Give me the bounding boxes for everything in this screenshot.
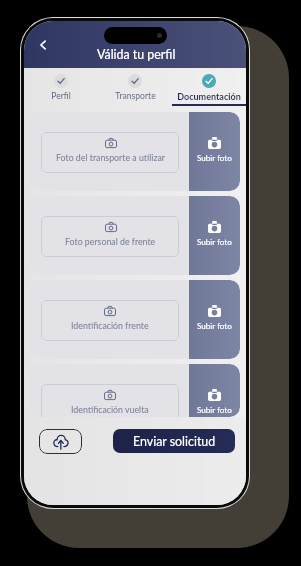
button[interactable]: Enviar solicitud <box>113 429 235 453</box>
staticText: Enviar solicitud <box>133 434 216 449</box>
staticText: Documentación <box>177 91 241 102</box>
button[interactable]: Identificación frente <box>41 300 179 341</box>
button[interactable]: Upload file <box>39 429 82 454</box>
button[interactable]: Subir foto <box>189 364 240 417</box>
button[interactable]: Documentación <box>172 68 246 106</box>
staticText: Subir foto <box>197 405 232 415</box>
staticText: Válida tu perfil <box>97 47 176 62</box>
button[interactable]: Foto del transporte a utilizar <box>41 132 179 173</box>
staticText: Subir foto <box>197 237 232 247</box>
button[interactable]: Subir foto <box>189 280 240 359</box>
staticText: Subir foto <box>197 321 232 331</box>
button[interactable]: Subir foto <box>189 196 240 275</box>
staticText: Transporte <box>115 91 156 101</box>
button[interactable]: Back <box>33 35 53 55</box>
button[interactable]: Transporte <box>98 68 172 106</box>
button[interactable]: Identificación vuelta <box>41 384 179 417</box>
staticText: Foto del transporte a utilizar <box>56 152 165 163</box>
button[interactable]: Perfil <box>24 68 98 106</box>
button[interactable]: Subir foto <box>189 112 240 191</box>
staticText: Identificación frente <box>71 320 149 331</box>
staticText: Foto personal de frente <box>65 236 156 247</box>
staticText: Perfil <box>51 91 71 101</box>
staticText: Identificación vuelta <box>71 404 149 415</box>
button[interactable]: Foto personal de frente <box>41 216 179 257</box>
staticText: Subir foto <box>197 153 232 163</box>
